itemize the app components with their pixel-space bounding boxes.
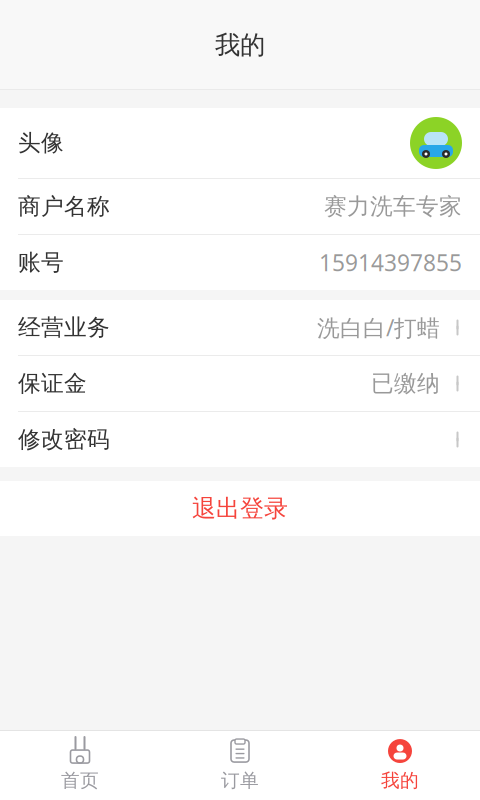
staticText: 商户名称 [18,193,110,220]
staticText: 15914397855 [319,247,462,277]
button[interactable]: 保证金 [0,356,480,411]
staticText: 已缴纳 [371,370,440,397]
staticText: 头像 [18,129,64,157]
button[interactable]: 修改密码 [0,412,480,467]
button[interactable]: 订单 [160,730,320,800]
button[interactable]: 账号 [0,235,480,290]
staticText: 我的 [215,29,265,60]
staticText: 洗白白/打蜡 [317,312,440,342]
button[interactable]: 我的 [320,730,480,800]
staticText: 退出登录 [192,494,288,523]
button[interactable]: 退出登录 [0,481,480,536]
staticText: 经营业务 [18,314,110,341]
staticText: 修改密码 [18,426,110,453]
button[interactable]: 首页 [0,730,160,800]
staticText: 订单 [221,769,259,792]
staticText: 首页 [61,769,99,792]
staticText: 保证金 [18,370,87,397]
button[interactable]: 头像 [0,108,480,178]
button[interactable]: 商户名称 [0,179,480,234]
button[interactable]: 经营业务 [0,300,480,355]
staticText: 账号 [18,249,64,276]
staticText: 我的 [381,769,419,792]
staticText: 赛力洗车专家 [324,193,462,220]
